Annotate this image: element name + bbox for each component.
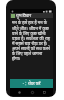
button[interactable]: Recents	[41, 89, 47, 95]
button[interactable]: Back	[16, 89, 22, 95]
staticText: मन के हारे हार है मन के जीते जीत। जीवन म…	[12, 20, 51, 61]
button[interactable]: शेयर करें	[10, 79, 53, 88]
staticText: शुभ विचार	[16, 13, 32, 18]
button[interactable]: शुभ विचार	[10, 13, 53, 18]
button[interactable]: Home	[29, 89, 35, 95]
staticText: शेयर करें	[28, 81, 41, 86]
